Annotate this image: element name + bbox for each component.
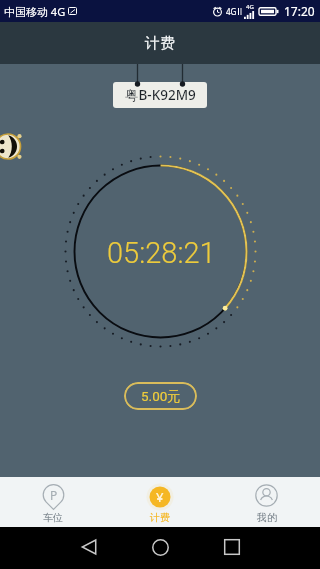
staticText: ¥: [156, 488, 164, 506]
staticText: 计费: [145, 34, 175, 53]
staticText: 5.00元: [141, 388, 181, 405]
staticText: 4G: [246, 3, 254, 11]
button[interactable]: 我的: [213, 477, 320, 527]
button[interactable]: Home: [142, 529, 178, 565]
staticText: 中国移动 4G: [4, 4, 66, 19]
staticText: 05:28:21: [107, 236, 216, 270]
button[interactable]: P: [0, 477, 106, 527]
button[interactable]: Recent apps: [214, 529, 250, 565]
staticText: 计费: [150, 511, 170, 524]
staticText: P: [50, 487, 58, 503]
button[interactable]: Back: [71, 529, 107, 565]
button[interactable]: ¥: [106, 477, 213, 527]
staticText: 17:20: [284, 3, 315, 19]
button[interactable]: 5.00元: [124, 382, 197, 410]
staticText: 我的: [257, 511, 277, 524]
staticText: 粤B-K92M9: [125, 86, 196, 104]
staticText: 4G: [226, 6, 237, 17]
staticText: 车位: [43, 511, 63, 524]
button[interactable]: 粤B-K92M9: [113, 82, 207, 108]
